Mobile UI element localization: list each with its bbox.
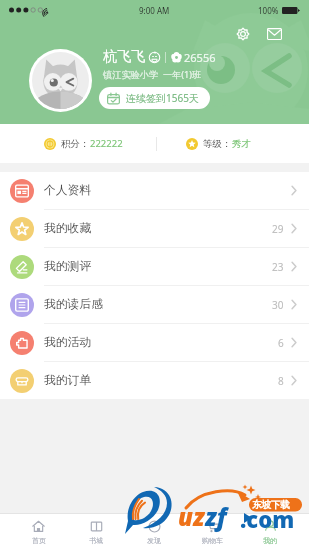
staticText: 我的收藏 (44, 221, 92, 236)
button[interactable]: Settings (230, 21, 256, 47)
button[interactable]: 个人资料 (0, 172, 309, 209)
button[interactable]: 我的活动 (0, 324, 309, 361)
staticText: 等级： (203, 138, 232, 150)
staticText: 100% (258, 5, 279, 16)
staticText: zf (205, 500, 227, 533)
staticText: 我的订单 (44, 373, 92, 388)
staticText: 8 (278, 374, 284, 388)
button[interactable]: 我的测评 (0, 248, 309, 285)
staticText: 6 (278, 336, 284, 350)
staticText: .com (240, 504, 295, 534)
staticText: 杭飞飞 (103, 48, 145, 66)
button[interactable]: 我的收藏 (0, 210, 309, 247)
button[interactable]: 发现 (125, 514, 183, 550)
button[interactable]: 连续签到1565天 (99, 87, 210, 109)
staticText: 连续签到1565天 (126, 91, 199, 105)
staticText: 222222 (90, 137, 123, 150)
staticText: 镇江实验小学 一年(1)班 (103, 68, 202, 81)
staticText: 29 (272, 222, 284, 236)
staticText: 个人资料 (44, 183, 92, 198)
staticText: 我的测评 (44, 259, 92, 274)
staticText: 我的读后感 (44, 297, 103, 312)
staticText: 购物车 (202, 536, 223, 545)
staticText: 积分： (61, 138, 90, 150)
button[interactable]: 我的订单 (0, 362, 309, 399)
staticText: 我的活动 (44, 335, 92, 350)
staticText: 我的 (263, 536, 277, 545)
button[interactable]: 首页 (10, 514, 67, 550)
button[interactable]: 积分： (0, 124, 156, 163)
staticText: 东坡下载 (252, 499, 290, 511)
staticText: 30 (272, 298, 284, 312)
button[interactable]: 我的读后感 (0, 286, 309, 323)
staticText: 秀才 (232, 138, 251, 150)
button[interactable]: Avatar (29, 49, 92, 112)
staticText: 26556 (184, 50, 216, 65)
button[interactable]: 购物车 (183, 514, 241, 550)
button[interactable]: 我的 (241, 514, 299, 550)
staticText: 23 (272, 260, 284, 274)
staticText: 发现 (147, 536, 161, 545)
button[interactable]: 等级： (157, 124, 309, 163)
staticText: 书城 (89, 536, 103, 545)
staticText: 首页 (32, 536, 46, 545)
staticText: uz (178, 500, 205, 533)
button[interactable]: 书城 (67, 514, 125, 550)
staticText: 9:00 AM (139, 5, 170, 16)
button[interactable]: Messages (261, 21, 287, 47)
